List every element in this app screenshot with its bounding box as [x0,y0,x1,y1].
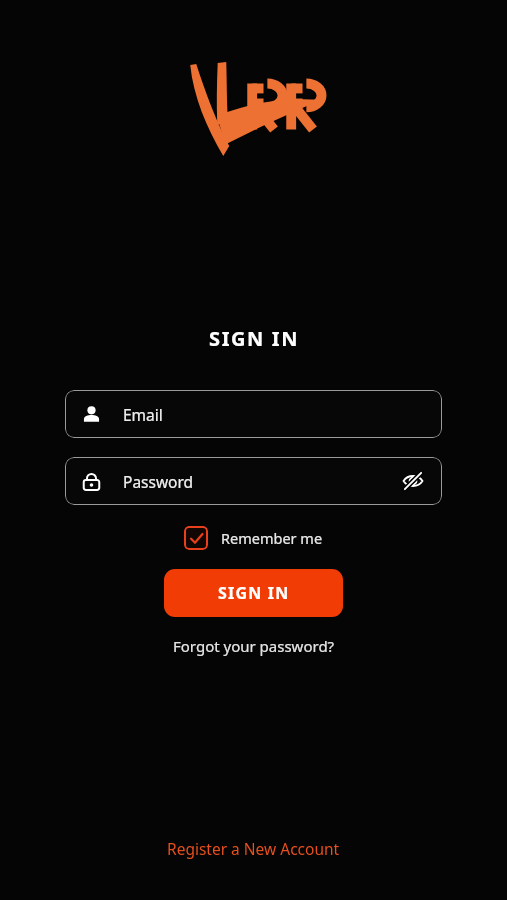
staticText: Register a New Account [167,838,340,859]
staticText: SIGN IN [218,582,290,604]
staticText: Forgot your password? [173,636,335,656]
button[interactable]: Email [65,390,442,438]
button[interactable]: Remember me [180,524,327,552]
button[interactable]: Password [65,457,442,505]
staticText: Email [123,404,426,425]
button[interactable]: SIGN IN [164,569,343,617]
button[interactable]: Register a New Account [159,834,348,863]
staticText: Remember me [221,528,323,548]
button[interactable]: Toggle password visibility [400,468,426,494]
button[interactable]: Forgot your password? [167,632,341,660]
staticText: Password [123,471,400,492]
staticText: SIGN IN [209,325,299,352]
